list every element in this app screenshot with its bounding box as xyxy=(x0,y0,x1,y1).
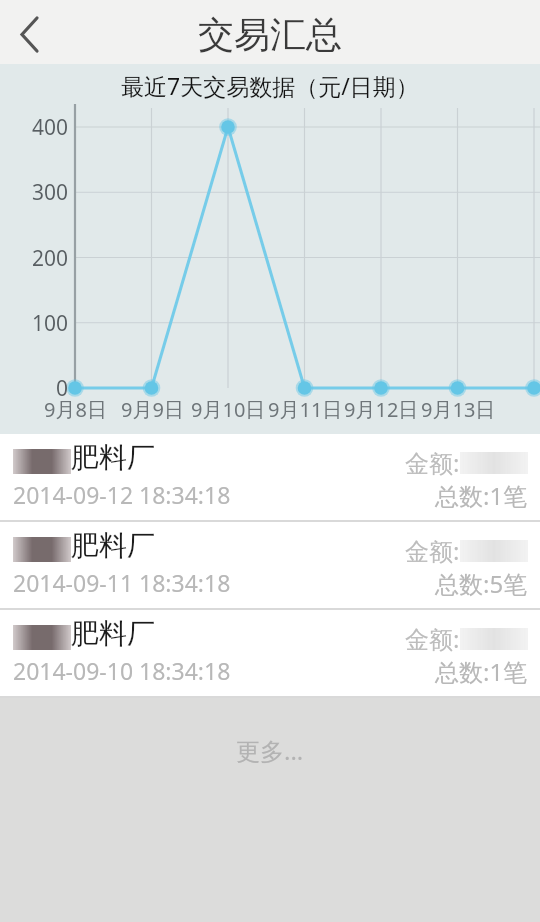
staticText: 金额: xyxy=(405,622,460,655)
staticText: 金额: xyxy=(405,534,460,567)
button[interactable]: 更多... xyxy=(216,728,324,773)
staticText: 9月11日 xyxy=(268,396,343,423)
staticText: 200 xyxy=(0,244,68,273)
button[interactable]: 肥料厂 xyxy=(0,522,540,608)
staticText: 总数:1笔 xyxy=(435,655,528,688)
staticText: 9月9日 xyxy=(121,396,184,423)
staticText: 0 xyxy=(0,374,68,403)
button[interactable] xyxy=(0,0,58,64)
staticText: 交易汇总 xyxy=(198,12,342,57)
staticText: 最近7天交易数据（元/日期） xyxy=(121,70,419,101)
staticText: 9月8日 xyxy=(44,396,107,423)
staticText: 300 xyxy=(0,178,68,207)
staticText: 2014-09-11 18:34:18 xyxy=(13,567,231,598)
staticText: 更多... xyxy=(236,734,304,767)
staticText: 9月13日 xyxy=(421,396,496,423)
staticText: 2014-09-12 18:34:18 xyxy=(13,479,231,510)
staticText: 肥料厂 xyxy=(71,440,155,475)
staticText: 肥料厂 xyxy=(71,616,155,651)
staticText: 100 xyxy=(0,309,68,338)
button[interactable]: 肥料厂 xyxy=(0,434,540,520)
staticText: 2014-09-10 18:34:18 xyxy=(13,655,231,686)
staticText: 总数:1笔 xyxy=(435,479,528,512)
staticText: 9月10日 xyxy=(191,396,266,423)
staticText: 肥料厂 xyxy=(71,528,155,563)
staticText: 9月12日 xyxy=(344,396,419,423)
staticText: 金额: xyxy=(405,446,460,479)
staticText: 400 xyxy=(0,113,68,142)
button[interactable]: 肥料厂 xyxy=(0,610,540,696)
staticText: 总数:5笔 xyxy=(435,567,528,600)
